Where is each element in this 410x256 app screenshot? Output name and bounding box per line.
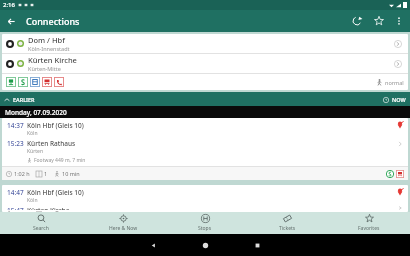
staticText: Kürten-Mitte: [28, 65, 61, 72]
staticText: NOW: [392, 96, 406, 103]
button[interactable]: EARLIER: [4, 96, 35, 103]
staticText: Stops: [198, 225, 212, 232]
staticText: 14:47: [7, 188, 24, 197]
button[interactable]: Show details: [392, 58, 404, 70]
staticText: 14:37: [7, 121, 24, 130]
staticText: Kürten Kirche: [28, 55, 77, 65]
staticText: 15:47: [7, 206, 24, 210]
staticText: Here & Now: [109, 225, 138, 232]
button[interactable]: Transport mode filter: [54, 77, 64, 87]
button[interactable]: Refresh: [346, 10, 368, 32]
staticText: 1:02 h: [14, 170, 30, 177]
button[interactable]: 14:37: [2, 118, 408, 180]
button[interactable]: Transport mode filter: [42, 77, 52, 87]
button[interactable]: Show details: [392, 38, 404, 50]
staticText: Köln: [27, 197, 38, 204]
staticText: Kürten: [27, 148, 43, 155]
other: Home: [202, 242, 209, 249]
staticText: 10 min: [62, 170, 80, 177]
button[interactable]: 14:47: [2, 185, 408, 212]
button[interactable]: Dom / Hbf: [2, 34, 408, 53]
staticText: Kürten Kirche: [27, 206, 70, 210]
staticText: Connections: [26, 15, 80, 27]
button[interactable]: Transport mode filter: [18, 77, 28, 87]
button[interactable]: NOW: [383, 96, 406, 103]
button[interactable]: Tickets: [246, 212, 328, 234]
staticText: Footway 449 m, 7 min: [34, 157, 86, 164]
button[interactable]: Transport mode filter: [6, 77, 16, 87]
button[interactable]: Stops: [164, 212, 246, 234]
staticText: Köln Hbf (Gleis 10): [27, 121, 84, 130]
staticText: Favorites: [358, 225, 380, 232]
staticText: 2:16: [3, 1, 15, 9]
staticText: Köln Hbf (Gleis 10): [27, 188, 84, 197]
staticText: normal: [385, 79, 404, 86]
staticText: 1: [44, 170, 48, 177]
staticText: EARLIER: [13, 96, 35, 103]
button[interactable]: Kürten Kirche: [2, 54, 408, 73]
staticText: Tickets: [279, 225, 296, 232]
button[interactable]: More options: [390, 12, 408, 30]
button[interactable]: Search: [0, 212, 82, 234]
other: Recents: [254, 242, 261, 249]
staticText: Monday, 07.09.2020: [5, 108, 67, 117]
staticText: Kürten Rathaus: [27, 139, 76, 148]
button[interactable]: Favorite: [368, 10, 390, 32]
button[interactable]: Back: [0, 10, 22, 32]
button[interactable]: Here & Now: [82, 212, 164, 234]
staticText: Köln: [27, 130, 38, 137]
staticText: 15:23: [7, 139, 24, 148]
staticText: Köln-Innenstadt: [28, 45, 70, 52]
staticText: Dom / Hbf: [28, 35, 65, 45]
button[interactable]: Transport mode filter: [30, 77, 40, 87]
other: Back: [150, 242, 157, 249]
button[interactable]: Favorites: [328, 212, 410, 234]
staticText: Search: [33, 225, 49, 232]
